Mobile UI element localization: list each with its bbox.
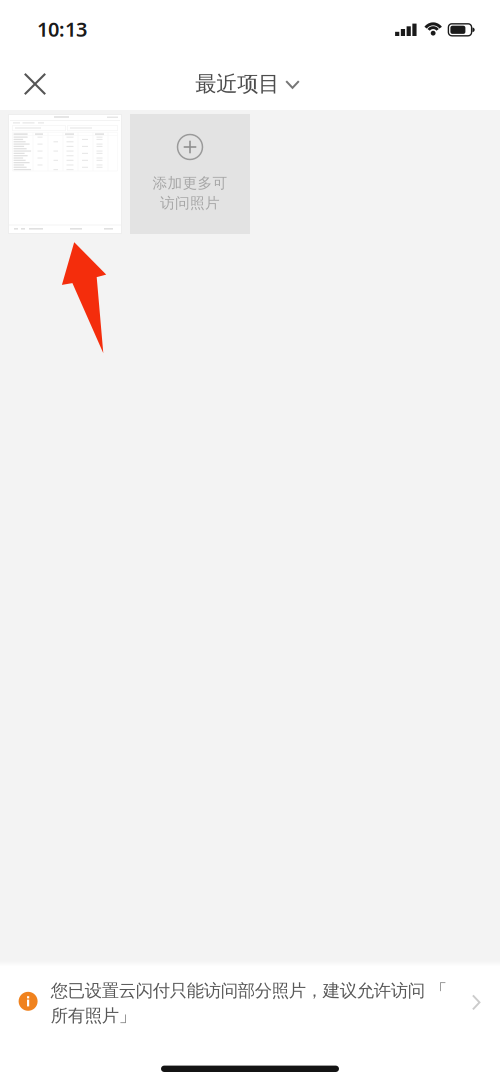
staticText: 10:13 [37,16,87,42]
button[interactable]: 您已设置云闪付只能访问部分照片，建议允许访问 「 [0,966,500,1044]
staticText: 添加更多可 [152,174,227,192]
button[interactable]: 添加更多可 [130,114,250,234]
staticText: 最近项目 [195,71,279,97]
staticText: 您已设置云闪付只能访问部分照片，建议允许访问 「 [51,980,447,1001]
button[interactable]: 文档照片 [8,114,122,234]
staticText: 访问照片 [160,194,220,212]
button[interactable]: 最近项目 [187,61,313,107]
button[interactable]: 关闭 [12,61,58,107]
staticText: 所有照片」 [51,1005,136,1026]
